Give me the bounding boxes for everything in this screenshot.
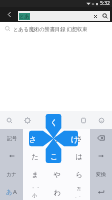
staticText: こ bbox=[50, 152, 58, 161]
staticText: さ bbox=[75, 134, 83, 143]
staticText: さ bbox=[29, 135, 37, 144]
staticText: A bbox=[13, 188, 17, 196]
button[interactable]: Search bbox=[100, 11, 110, 21]
button[interactable]: や bbox=[46, 165, 68, 183]
button[interactable]: ?! bbox=[68, 183, 90, 200]
button[interactable]: とある魔術の禁書目録 幻想収束 bbox=[0, 23, 112, 34]
button[interactable]: ま bbox=[23, 165, 46, 183]
other: Move cursor right bbox=[90, 147, 112, 165]
button[interactable]: は bbox=[68, 147, 90, 165]
button[interactable]: Move cursor right bbox=[90, 147, 112, 165]
other: Backspace bbox=[90, 129, 112, 147]
staticText: カナ bbox=[6, 171, 17, 177]
button[interactable]: Back bbox=[0, 7, 18, 22]
staticText: ま bbox=[31, 170, 39, 179]
staticText: 5:32 bbox=[100, 0, 110, 7]
staticText: ?! bbox=[77, 186, 81, 193]
staticText: は bbox=[75, 152, 83, 161]
button[interactable]: わ bbox=[46, 183, 68, 200]
staticText: ゛゜ bbox=[29, 186, 40, 192]
button[interactable]: カナ bbox=[0, 165, 23, 183]
staticText: け bbox=[71, 135, 79, 144]
staticText: た bbox=[31, 152, 39, 161]
staticText: く bbox=[50, 118, 58, 127]
other: Move cursor left bbox=[0, 147, 23, 165]
button[interactable]: あ bbox=[23, 129, 46, 147]
staticText: 変換 bbox=[96, 171, 106, 177]
button[interactable]: な bbox=[46, 147, 68, 165]
staticText: な bbox=[53, 152, 61, 161]
staticText: 記号 bbox=[7, 135, 17, 141]
other: Enter bbox=[90, 183, 112, 200]
staticText: わ bbox=[53, 188, 61, 197]
button[interactable]: 記号 bbox=[0, 129, 23, 147]
button[interactable]: Settings bbox=[18, 111, 36, 129]
button[interactable]: か bbox=[46, 129, 68, 147]
button[interactable]: Clear text bbox=[91, 12, 100, 21]
button[interactable]: 変換 bbox=[90, 165, 112, 183]
button[interactable]: た bbox=[23, 147, 46, 165]
button[interactable]: Backspace bbox=[90, 129, 112, 147]
button[interactable]: さ bbox=[68, 129, 90, 147]
button[interactable]: Clipboard bbox=[74, 111, 92, 129]
button[interactable]: Move cursor left bbox=[0, 147, 23, 165]
button[interactable]: Enter bbox=[90, 183, 112, 200]
button[interactable]: ら bbox=[68, 165, 90, 183]
staticText: 小 bbox=[32, 192, 37, 198]
staticText: か bbox=[53, 134, 61, 143]
button[interactable]: Emoji bbox=[92, 111, 110, 129]
staticText: ら bbox=[75, 170, 83, 179]
staticText: 、。 bbox=[75, 193, 83, 198]
staticText: あ bbox=[6, 188, 13, 196]
staticText: とある bbox=[19, 13, 30, 20]
button[interactable]: あ bbox=[0, 183, 23, 200]
staticText: や bbox=[53, 170, 61, 179]
button[interactable]: とある bbox=[18, 11, 110, 21]
staticText: あ bbox=[31, 134, 39, 143]
button[interactable]: ゛゜ bbox=[23, 183, 46, 200]
button[interactable]: Search bbox=[0, 111, 18, 129]
staticText: とある魔術の禁書目録 幻想収束 bbox=[13, 25, 88, 32]
